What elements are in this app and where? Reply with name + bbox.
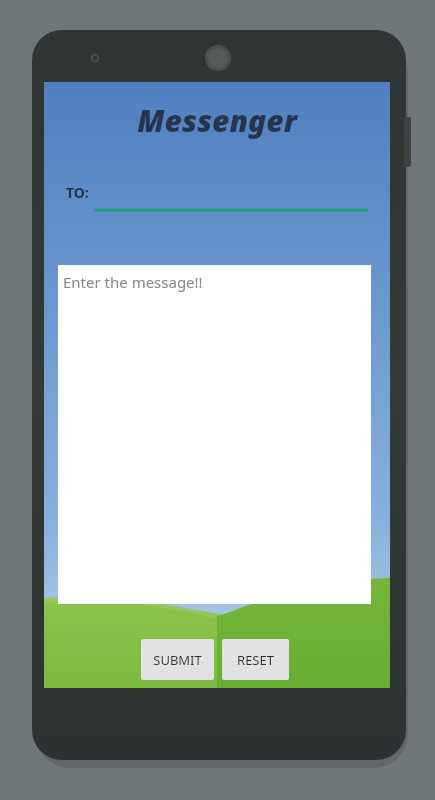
staticText: TO: xyxy=(66,183,89,202)
staticText: Messenger xyxy=(137,100,297,141)
button[interactable]: Message body xyxy=(58,265,371,604)
button[interactable]: RESET xyxy=(222,639,289,680)
staticText: Enter the message!! xyxy=(63,272,203,292)
button[interactable]: SUBMIT xyxy=(141,639,214,680)
staticText: RESET xyxy=(237,651,274,669)
staticText: SUBMIT xyxy=(153,651,202,669)
button[interactable]: Recipient xyxy=(94,180,368,212)
